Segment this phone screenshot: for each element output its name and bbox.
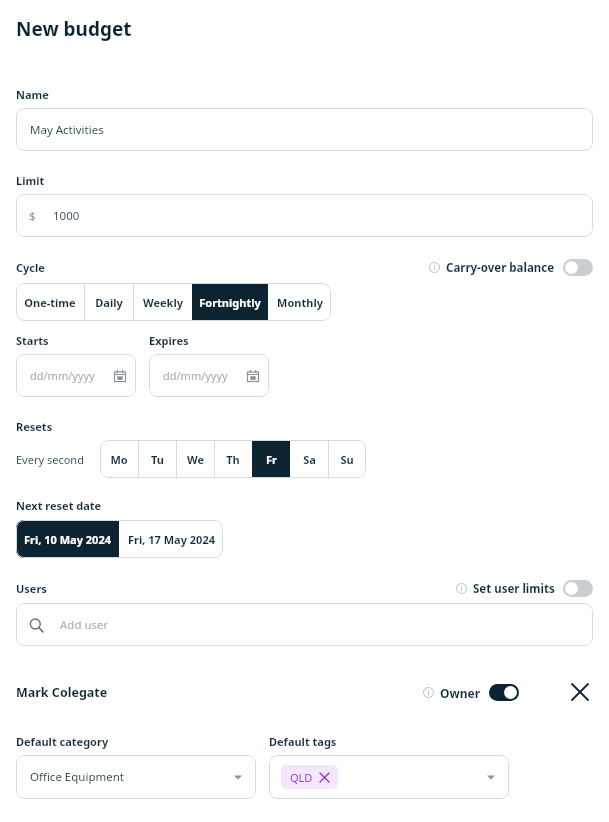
staticText: Office Equipment xyxy=(30,769,124,785)
staticText: dd/mm/yyyy xyxy=(163,368,228,383)
button[interactable]: Set user limits xyxy=(563,580,593,597)
staticText: Next reset date xyxy=(16,498,102,513)
button[interactable]: QLD xyxy=(281,765,338,789)
staticText: Every second xyxy=(16,452,84,467)
button[interactable]: dd/mm/yyyy xyxy=(149,354,269,397)
button[interactable]: Monthly xyxy=(268,283,331,321)
staticText: Set user limits xyxy=(473,581,555,597)
staticText: Fri, 17 May 2024 xyxy=(128,532,215,547)
button[interactable]: Fr xyxy=(252,440,290,478)
button[interactable]: May Activities xyxy=(16,108,593,151)
button[interactable]: Su xyxy=(328,440,366,478)
staticText: Owner xyxy=(440,685,481,701)
staticText: Starts xyxy=(16,333,49,348)
staticText: Resets xyxy=(16,419,53,434)
button[interactable]: We xyxy=(176,440,214,478)
staticText: Carry-over balance xyxy=(446,260,555,276)
button[interactable]: Carry-over balance xyxy=(563,259,593,276)
button[interactable]: Th xyxy=(214,440,252,478)
staticText: Th xyxy=(226,452,240,467)
staticText: We xyxy=(187,452,204,467)
button[interactable]: Fortnightly xyxy=(192,283,268,321)
staticText: Expires xyxy=(149,333,189,348)
button[interactable]: dd/mm/yyyy xyxy=(16,354,136,397)
staticText: Mark Colegate xyxy=(16,684,108,701)
staticText: Limit xyxy=(16,173,45,188)
staticText: Add user xyxy=(60,617,109,633)
button[interactable]: One-time xyxy=(16,283,84,321)
staticText: Default tags xyxy=(269,734,337,749)
staticText: May Activities xyxy=(30,122,104,138)
staticText: QLD xyxy=(290,770,313,785)
button[interactable]: QLD xyxy=(269,755,509,799)
staticText: Fr xyxy=(266,452,277,467)
button[interactable]: Sa xyxy=(290,440,328,478)
button[interactable]: Weekly xyxy=(133,283,192,321)
staticText: dd/mm/yyyy xyxy=(30,368,95,383)
button[interactable]: Fri, 17 May 2024 xyxy=(119,520,223,558)
staticText: 1000 xyxy=(53,208,80,224)
staticText: Monthly xyxy=(277,295,323,310)
button[interactable]: $ xyxy=(16,194,593,237)
staticText: Cycle xyxy=(16,260,45,275)
staticText: Sa xyxy=(303,452,316,467)
staticText: Mo xyxy=(110,452,128,467)
staticText: Default category xyxy=(16,734,109,749)
button[interactable]: Owner xyxy=(489,684,519,701)
staticText: Name xyxy=(16,87,49,102)
staticText: Fri, 10 May 2024 xyxy=(24,532,111,547)
staticText: Daily xyxy=(95,295,123,310)
staticText: $ xyxy=(29,208,36,224)
staticText: One-time xyxy=(24,295,76,310)
button[interactable]: Mo xyxy=(100,440,138,478)
staticText: Users xyxy=(16,581,47,596)
button[interactable]: Office Equipment xyxy=(16,755,256,799)
button[interactable]: Fri, 10 May 2024 xyxy=(16,520,119,558)
staticText: Su xyxy=(340,452,354,467)
button[interactable]: Add user xyxy=(16,603,593,646)
button[interactable]: Daily xyxy=(84,283,133,321)
button[interactable]: Tu xyxy=(138,440,176,478)
staticText: Tu xyxy=(151,452,164,467)
staticText: New budget xyxy=(16,16,132,42)
button[interactable]: Remove user xyxy=(567,679,593,705)
staticText: Weekly xyxy=(143,295,183,310)
staticText: Fortnightly xyxy=(199,295,261,310)
